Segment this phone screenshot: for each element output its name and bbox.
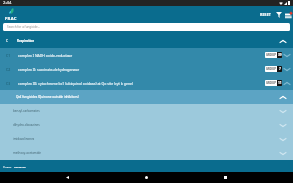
button[interactable]: QoI fungicides (Quinone outside inhibito…: [0, 90, 293, 104]
button[interactable]: C1: [0, 48, 293, 62]
staticText: GROUP: [266, 53, 276, 57]
staticText: 11: [278, 81, 282, 85]
staticText: Respiration: [17, 39, 35, 43]
staticText: C3: [6, 81, 11, 86]
button[interactable]: C: [0, 34, 293, 48]
staticText: 2:44: [3, 0, 12, 6]
staticText: C1: [6, 53, 11, 58]
staticText: Search for a fungicide...: [7, 25, 41, 29]
button[interactable]: benzyl-carbamates: [0, 104, 293, 118]
staticText: dihydro-dioxazines: [13, 123, 40, 127]
button[interactable]: C3: [0, 76, 293, 90]
button[interactable]: Search for a fungicide...: [3, 23, 290, 31]
staticText: complex III: cytochrome bc1 (ubiquinol o…: [18, 81, 265, 86]
staticText: RESET: [260, 12, 271, 17]
button[interactable]: imidazolinones: [0, 132, 293, 146]
button[interactable]: Back: [56, 172, 78, 183]
staticText: 7: [279, 67, 281, 71]
staticText: 39: [278, 53, 282, 57]
staticText: complex I NADH oxido-reductase: [18, 53, 265, 58]
button[interactable]: Filter: [274, 10, 283, 19]
staticText: C: [6, 39, 9, 43]
button[interactable]: Disclaimer: [14, 165, 26, 168]
staticText: FRAC: [5, 16, 17, 22]
button[interactable]: RESET: [258, 9, 273, 20]
button[interactable]: Selected list: [283, 10, 293, 20]
button[interactable]: dihydro-dioxazines: [0, 118, 293, 132]
button[interactable]: Recent apps: [214, 172, 236, 183]
staticText: C2: [6, 67, 11, 72]
button[interactable]: C2: [0, 62, 293, 76]
staticText: © FRAC: [3, 165, 12, 168]
button[interactable]: Home: [135, 172, 157, 183]
staticText: benzyl-carbamates: [13, 109, 40, 113]
staticText: imidazolinones: [13, 137, 35, 141]
staticText: GROUP: [266, 81, 276, 85]
staticText: methoxy-acetamide: [13, 151, 41, 155]
staticText: QoI fungicides (Quinone outside inhibito…: [16, 95, 79, 99]
staticText: GROUP: [266, 67, 276, 71]
button[interactable]: methoxy-acetamide: [0, 146, 293, 160]
staticText: complex II: succinate-dehydrogenase: [18, 67, 265, 72]
